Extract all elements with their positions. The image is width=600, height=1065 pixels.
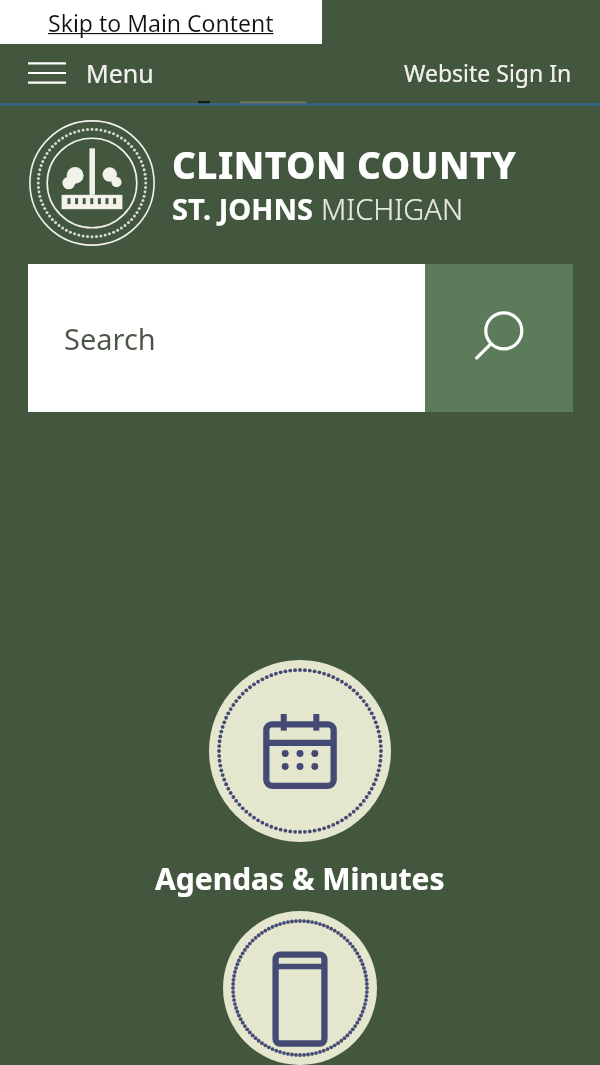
button[interactable]: Website Sign In: [404, 57, 572, 88]
button[interactable]: Agendas & Minutes: [0, 660, 600, 899]
button[interactable]: [0, 911, 600, 1065]
staticText: Agendas & Minutes: [155, 858, 445, 899]
staticText: Search: [64, 319, 156, 358]
staticText: CLINTON COUNTY: [172, 139, 517, 189]
button[interactable]: Search: [425, 264, 573, 412]
button[interactable]: Search: [28, 264, 425, 412]
staticText: Menu: [86, 56, 154, 90]
staticText: MICHIGAN: [321, 189, 464, 228]
button[interactable]: Skip to Main Content: [0, 0, 322, 44]
staticText: Skip to Main Content: [48, 7, 274, 38]
staticText: ST. JOHNS: [172, 189, 321, 228]
staticText: Website Sign In: [404, 57, 572, 88]
button[interactable]: Menu: [26, 56, 154, 90]
